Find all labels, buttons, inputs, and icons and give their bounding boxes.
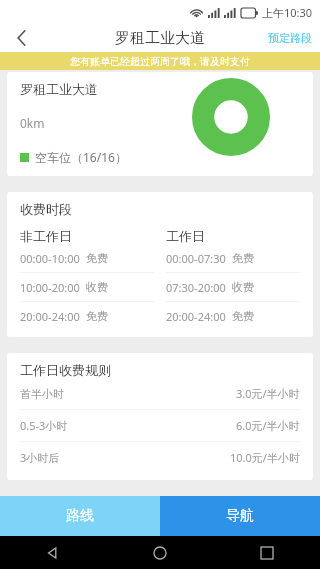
- staticText: 非工作日: [20, 228, 72, 244]
- staticText: 10:00-20:00: [20, 280, 80, 295]
- staticText: 00:00-07:30: [166, 251, 226, 266]
- staticText: 10.0元/半小时: [230, 450, 300, 465]
- button[interactable]: 工作日收费规则: [7, 353, 313, 480]
- staticText: 07:30-20:00: [166, 280, 226, 295]
- staticText: 3小时后: [20, 450, 230, 465]
- button[interactable]: 您有账单已经超过两周了哦，请及时支付: [0, 52, 320, 70]
- staticText: 工作日: [166, 228, 205, 244]
- button[interactable]: 返回: [0, 24, 42, 52]
- staticText: 预定路段: [268, 31, 312, 45]
- staticText: 收费时段: [20, 201, 72, 217]
- staticText: 0.5-3小时: [20, 418, 236, 433]
- button[interactable]: 收费时段: [7, 192, 313, 337]
- staticText: 空车位（16/16）: [35, 149, 127, 165]
- button[interactable]: 导航: [160, 496, 320, 536]
- staticText: 6.0元/半小时: [236, 418, 300, 433]
- button[interactable]: 路线: [0, 496, 160, 536]
- staticText: 首半小时: [20, 387, 236, 401]
- staticText: 免费: [86, 309, 108, 323]
- staticText: 路线: [66, 507, 94, 525]
- staticText: 导航: [226, 507, 254, 525]
- staticText: 您有账单已经超过两周了哦，请及时支付: [70, 55, 250, 68]
- staticText: 收费: [86, 280, 108, 294]
- button[interactable]: 最近任务: [213, 536, 320, 569]
- staticText: 0km: [20, 115, 45, 131]
- button[interactable]: 预定路段: [268, 24, 312, 52]
- staticText: 00:00-10:00: [20, 251, 80, 266]
- button[interactable]: 主页: [106, 536, 213, 569]
- staticText: 上午10:30: [262, 5, 313, 20]
- button[interactable]: 返回: [0, 536, 106, 569]
- staticText: 收费: [232, 280, 254, 294]
- staticText: 免费: [232, 251, 254, 265]
- staticText: 20:00-24:00: [20, 309, 80, 324]
- staticText: 免费: [232, 309, 254, 323]
- button[interactable]: 罗租工业大道: [7, 72, 313, 176]
- staticText: 工作日收费规则: [20, 362, 111, 378]
- staticText: 罗租工业大道: [115, 29, 205, 48]
- staticText: 3.0元/半小时: [236, 386, 300, 401]
- staticText: 罗租工业大道: [20, 81, 98, 97]
- staticText: 免费: [86, 251, 108, 265]
- staticText: 20:00-24:00: [166, 309, 226, 324]
